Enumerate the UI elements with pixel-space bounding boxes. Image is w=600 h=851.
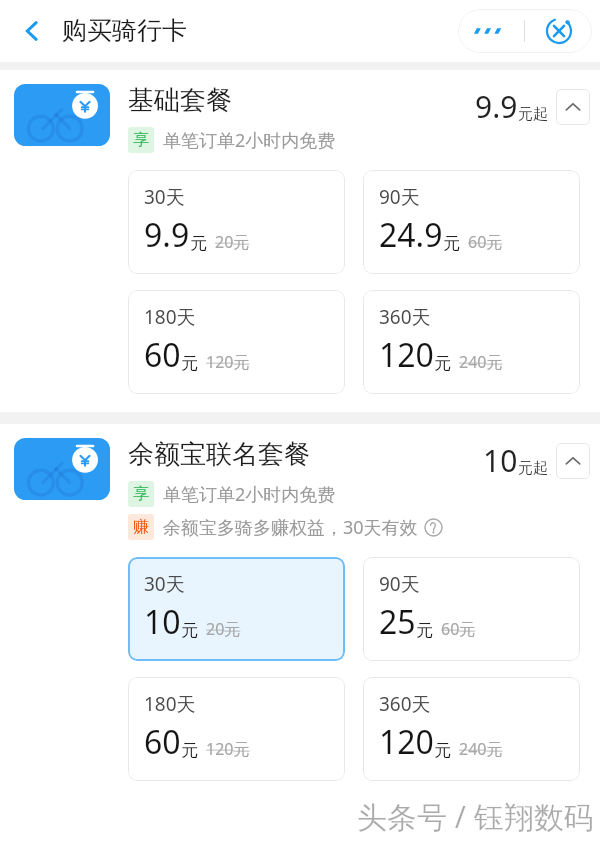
staticText: 20元	[206, 618, 241, 640]
button[interactable]: 360天	[363, 290, 580, 394]
staticText: 元	[181, 620, 198, 641]
staticText: 30天	[144, 571, 185, 597]
staticText: 元起	[518, 105, 548, 124]
staticText: 360天	[379, 691, 431, 717]
button[interactable]: Help	[423, 517, 443, 537]
staticText: 120	[379, 720, 434, 764]
staticText: 享	[133, 130, 149, 150]
staticText: 25	[379, 600, 416, 644]
staticText: 10	[144, 600, 181, 644]
staticText: 10	[483, 440, 518, 481]
staticText: 360天	[379, 304, 431, 330]
staticText: 90天	[379, 571, 420, 597]
staticText: 基础套餐	[128, 84, 232, 117]
staticText: 单笔订单2小时内免费	[163, 128, 336, 153]
staticText: 9.9	[144, 213, 190, 257]
staticText: 60	[144, 333, 181, 377]
staticText: 余额宝联名套餐	[128, 438, 310, 471]
button[interactable]: 90天	[363, 557, 580, 661]
button[interactable]: Collapse	[556, 443, 590, 479]
button[interactable]: 90天	[363, 170, 580, 274]
button[interactable]: 180天	[128, 677, 345, 781]
staticText: 余额宝多骑多赚权益，30天有效	[163, 515, 418, 540]
staticText: 120元	[206, 738, 250, 760]
button[interactable]: Collapse	[556, 89, 590, 125]
staticText: 赚	[133, 517, 149, 537]
button[interactable]: 360天	[363, 677, 580, 781]
staticText: 120元	[206, 351, 250, 373]
staticText: 60元	[468, 231, 503, 253]
staticText: 元	[190, 233, 207, 254]
staticText: 头条号 / 钰翔数码	[357, 796, 594, 837]
staticText: 元起	[518, 459, 548, 478]
button[interactable]: More options	[458, 9, 524, 53]
button[interactable]: Close	[525, 9, 592, 53]
staticText: 单笔订单2小时内免费	[163, 482, 336, 507]
staticText: 元	[443, 233, 460, 254]
staticText: 9.9	[475, 86, 518, 127]
staticText: 240元	[459, 351, 503, 373]
staticText: 享	[133, 484, 149, 504]
staticText: 购买骑行卡	[62, 15, 187, 46]
staticText: 元	[416, 620, 433, 641]
staticText: 60元	[441, 618, 476, 640]
staticText: 元	[181, 353, 198, 374]
button[interactable]: 30天	[128, 170, 345, 274]
staticText: 90天	[379, 184, 420, 210]
staticText: 60	[144, 720, 181, 764]
staticText: 元	[434, 353, 451, 374]
staticText: 120	[379, 333, 434, 377]
staticText: 元	[434, 740, 451, 761]
staticText: 30天	[144, 184, 185, 210]
staticText: 180天	[144, 691, 196, 717]
staticText: 240元	[459, 738, 503, 760]
staticText: 180天	[144, 304, 196, 330]
button[interactable]: Back	[6, 5, 58, 57]
staticText: 20元	[215, 231, 250, 253]
staticText: 元	[181, 740, 198, 761]
button[interactable]: 180天	[128, 290, 345, 394]
button[interactable]: 30天	[128, 557, 345, 661]
staticText: 24.9	[379, 213, 443, 257]
